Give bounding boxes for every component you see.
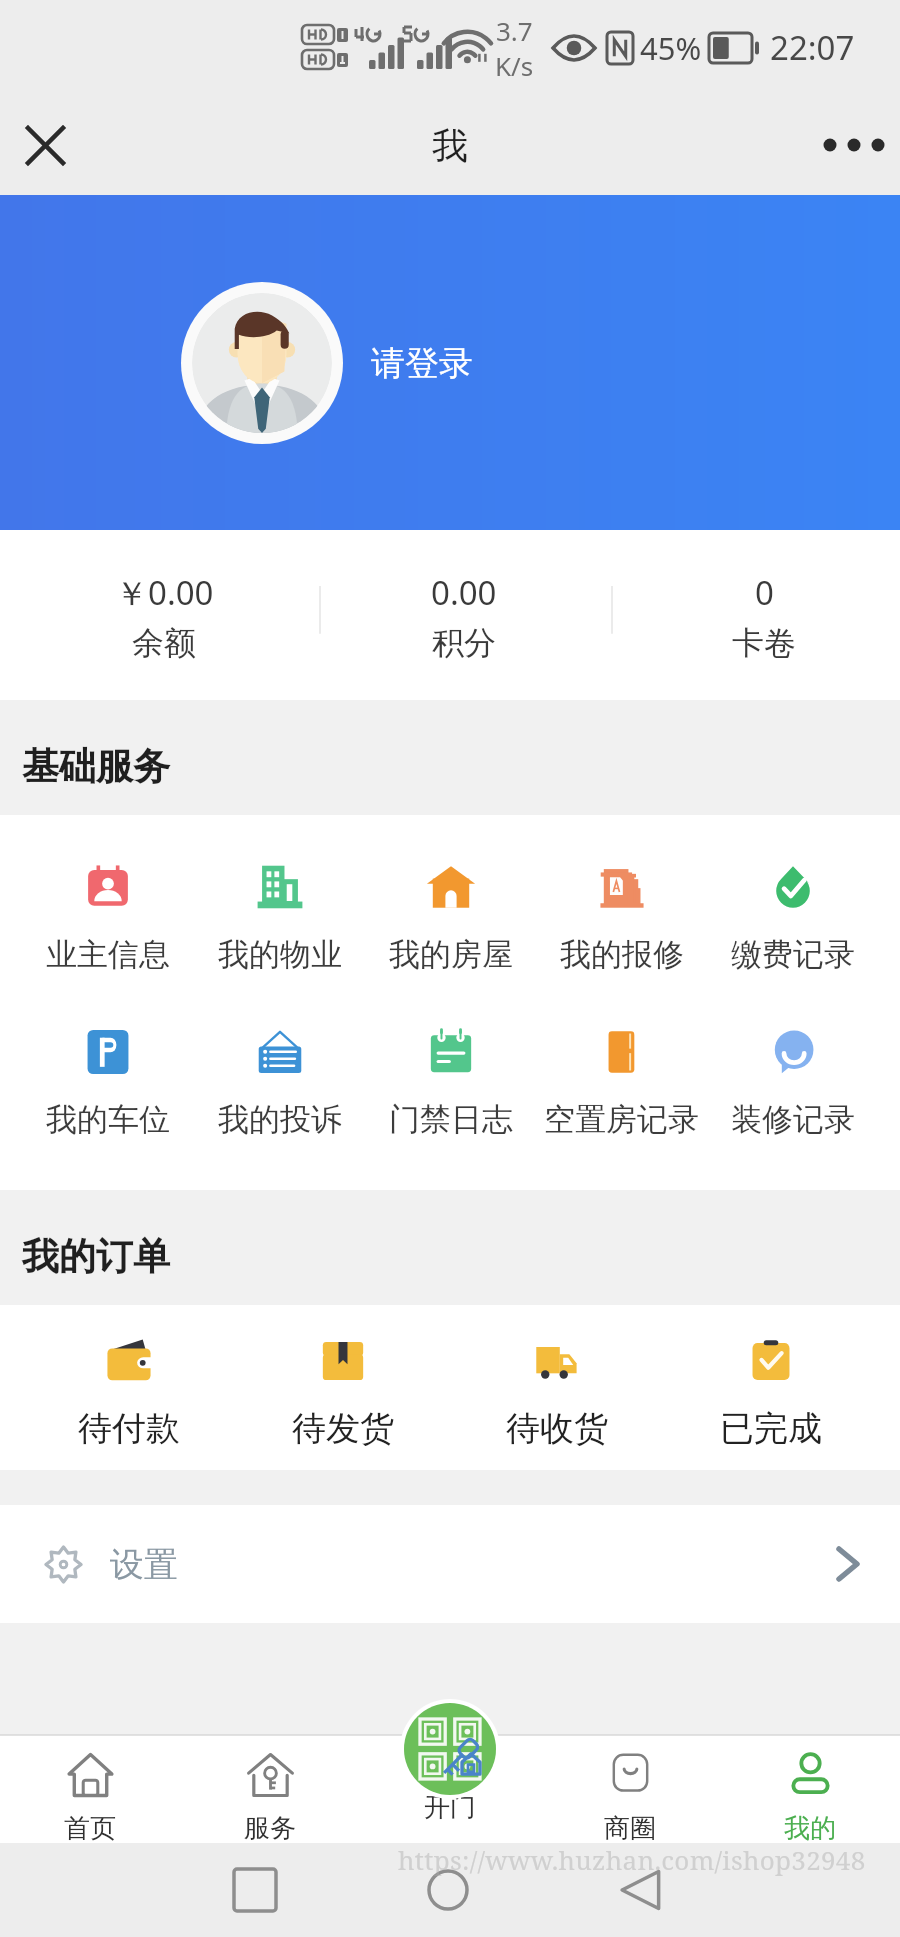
staticText: K/s <box>495 48 534 83</box>
button[interactable]: 我的投诉 <box>194 1024 365 1139</box>
button[interactable]: 缴费记录 <box>707 859 878 974</box>
staticText: 已完成 <box>720 1407 822 1450</box>
button[interactable]: 我的房屋 <box>365 859 536 974</box>
button[interactable]: 待发货 <box>236 1333 450 1450</box>
staticText: 待发货 <box>292 1407 394 1450</box>
button[interactable]: Home <box>420 1862 476 1918</box>
button[interactable]: 我的车位 <box>22 1024 194 1139</box>
staticText: 我的物业 <box>218 935 342 974</box>
button[interactable]: Back <box>613 1862 669 1918</box>
staticText: 待收货 <box>506 1407 608 1450</box>
staticText: 服务 <box>244 1812 296 1843</box>
staticText: 45% <box>640 27 702 69</box>
button[interactable]: Close <box>0 95 100 195</box>
button[interactable]: 空置房记录 <box>536 1024 707 1139</box>
staticText: 商圈 <box>604 1812 656 1843</box>
staticText: 基础服务 <box>22 743 170 790</box>
button[interactable]: 开门 Scan to open door <box>404 1703 496 1795</box>
button[interactable]: 待收货 <box>450 1333 664 1450</box>
staticText: 0 <box>755 570 774 615</box>
button[interactable]: 装修记录 <box>707 1024 878 1139</box>
button[interactable]: 商圈 <box>540 1735 720 1843</box>
staticText: 我的报修 <box>560 935 684 974</box>
staticText: 22:07 <box>770 25 855 70</box>
staticText: 3.7 <box>496 13 533 48</box>
button[interactable]: Recents <box>227 1862 283 1918</box>
staticText: 门禁日志 <box>389 1100 513 1139</box>
staticText: 业主信息 <box>46 935 170 974</box>
staticText: 余额 <box>132 623 196 663</box>
staticText: 我的投诉 <box>218 1100 342 1139</box>
staticText: 装修记录 <box>731 1100 855 1139</box>
staticText: https://www.huzhan.com/ishop32948 <box>398 1842 866 1877</box>
button[interactable]: Profile avatar <box>181 282 343 444</box>
button[interactable]: 0 <box>614 531 900 701</box>
button[interactable]: 首页 <box>0 1735 180 1843</box>
staticText: 缴费记录 <box>731 935 855 974</box>
staticText: 卡卷 <box>732 623 796 663</box>
button[interactable]: 业主信息 <box>22 859 194 974</box>
button[interactable]: 已完成 <box>664 1333 878 1450</box>
staticText: 首页 <box>64 1812 116 1843</box>
button[interactable]: ￥0.00 <box>14 531 314 701</box>
staticText: 空置房记录 <box>544 1100 699 1139</box>
button[interactable]: 我的 <box>720 1735 900 1843</box>
staticText: 0.00 <box>431 570 497 615</box>
button[interactable]: 服务 <box>180 1735 360 1843</box>
staticText: 设置 <box>110 1543 178 1586</box>
staticText: 待付款 <box>78 1407 180 1450</box>
button[interactable]: 我的报修 <box>536 859 707 974</box>
button[interactable]: More options <box>800 95 900 195</box>
staticText: 我的车位 <box>46 1100 170 1139</box>
button[interactable]: 设置 <box>0 1505 900 1623</box>
button[interactable]: 门禁日志 <box>365 1024 536 1139</box>
staticText: 我的房屋 <box>389 935 513 974</box>
button[interactable]: 开门 <box>360 1791 540 1843</box>
button[interactable]: 我的物业 <box>194 859 365 974</box>
button[interactable]: 待付款 <box>22 1333 236 1450</box>
button[interactable]: 0.00 <box>314 531 614 701</box>
staticText: 我的订单 <box>22 1233 170 1280</box>
staticText: ￥0.00 <box>115 570 214 615</box>
staticText: 我的 <box>784 1812 836 1843</box>
staticText: 我 <box>432 123 468 168</box>
staticText: 开门 <box>424 1791 476 1824</box>
staticText: 积分 <box>432 623 496 663</box>
staticText: 请登录 <box>371 342 473 385</box>
